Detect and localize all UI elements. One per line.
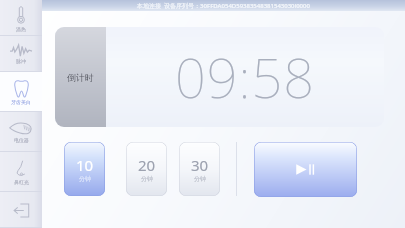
staticText: 本地连接 设备序列号：30FFDA054D59383548381543030l0… bbox=[137, 2, 310, 10]
button[interactable]: 倒计时 bbox=[55, 27, 384, 127]
button[interactable]: 鼻红光 bbox=[0, 152, 42, 192]
staticText: 鼻红光 bbox=[14, 179, 29, 185]
button[interactable]: 温热 bbox=[0, 0, 42, 36]
staticText: 分钟 bbox=[141, 175, 153, 183]
staticText: 脉冲 bbox=[16, 58, 26, 64]
button[interactable]: 电位器 bbox=[0, 112, 42, 152]
staticText: 09:58 bbox=[175, 40, 315, 114]
button[interactable]: 牙齿美白 bbox=[0, 72, 42, 112]
staticText: 分钟 bbox=[194, 175, 206, 183]
staticText: 温热 bbox=[16, 26, 26, 32]
button[interactable]: 播放或暂停 bbox=[254, 142, 357, 197]
button[interactable]: 20 bbox=[126, 142, 167, 196]
button[interactable]: 脉冲 bbox=[0, 36, 42, 72]
staticText: 20 bbox=[138, 155, 156, 175]
staticText: 电位器 bbox=[14, 137, 29, 143]
button[interactable]: 30 bbox=[179, 142, 220, 196]
button[interactable]: 10 bbox=[64, 142, 105, 196]
button[interactable]: 退出 bbox=[0, 192, 42, 228]
staticText: 10 bbox=[76, 155, 94, 175]
staticText: 分钟 bbox=[79, 175, 91, 183]
staticText: 牙齿美白 bbox=[11, 99, 31, 105]
staticText: 30 bbox=[191, 155, 209, 175]
staticText: 倒计时 bbox=[67, 72, 94, 83]
